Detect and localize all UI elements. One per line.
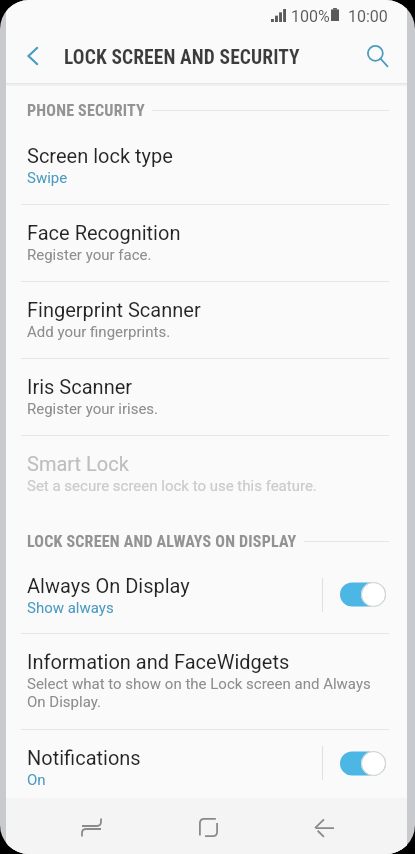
staticText: PHONE SECURITY (27, 101, 145, 120)
staticText: Always On Display (27, 574, 190, 598)
staticText: LOCK SCREEN AND ALWAYS ON DISPLAY (27, 532, 297, 551)
button[interactable]: Screen lock type (6, 128, 407, 204)
staticText: Swipe (27, 169, 68, 187)
button[interactable]: Information and FaceWidgets (6, 634, 407, 729)
staticText: Register your irises. (27, 400, 159, 418)
staticText: 10:00 (348, 7, 388, 26)
staticText: Smart Lock (27, 452, 129, 476)
button[interactable]: Recent apps (33, 798, 150, 854)
button[interactable]: Navigate up (6, 36, 58, 83)
button[interactable]: Toggle on (340, 751, 386, 776)
staticText: Set a secure screen lock to use this fea… (27, 477, 317, 495)
staticText: Face Recognition (27, 221, 181, 245)
button[interactable]: Notifications (6, 730, 407, 798)
button[interactable]: Toggle on (340, 582, 386, 607)
staticText: Information and FaceWidgets (27, 650, 290, 674)
button[interactable]: Home (150, 798, 266, 854)
button[interactable]: Search (353, 36, 407, 83)
staticText: Iris Scanner (27, 375, 133, 399)
button[interactable]: Smart Lock (6, 436, 407, 514)
staticText: Select what to show on the Lock screen a… (27, 675, 389, 711)
staticText: Screen lock type (27, 144, 173, 168)
staticText: Notifications (27, 746, 141, 770)
button[interactable]: Back (266, 798, 382, 854)
staticText: Show always (27, 599, 114, 617)
button[interactable]: Iris Scanner (6, 359, 407, 435)
button[interactable]: Fingerprint Scanner (6, 282, 407, 358)
button[interactable]: Always On Display (6, 558, 407, 633)
staticText: Add your fingerprints. (27, 323, 171, 341)
staticText: 100% (291, 7, 330, 26)
staticText: LOCK SCREEN AND SECURITY (64, 46, 300, 69)
button[interactable]: Face Recognition (6, 205, 407, 281)
staticText: Register your face. (27, 246, 152, 264)
staticText: Fingerprint Scanner (27, 298, 201, 322)
staticText: On (27, 771, 46, 789)
